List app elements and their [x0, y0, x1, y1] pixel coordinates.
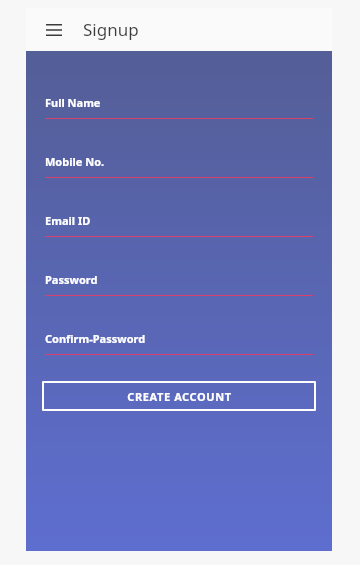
staticText: Full Name [45, 95, 101, 110]
button[interactable]: Mobile No. [45, 154, 313, 178]
button[interactable]: Open navigation menu [38, 14, 70, 46]
button[interactable]: Email ID [45, 213, 313, 237]
button[interactable]: CREATE ACCOUNT [42, 381, 316, 411]
staticText: Password [45, 272, 98, 287]
staticText: Mobile No. [45, 154, 105, 169]
staticText: Signup [83, 18, 139, 41]
staticText: Confirm-Password [45, 331, 146, 346]
staticText: Email ID [45, 213, 91, 228]
button[interactable]: Confirm-Password [45, 331, 313, 355]
staticText: CREATE ACCOUNT [127, 389, 232, 404]
button[interactable]: Full Name [45, 95, 313, 119]
button[interactable]: Password [45, 272, 313, 296]
